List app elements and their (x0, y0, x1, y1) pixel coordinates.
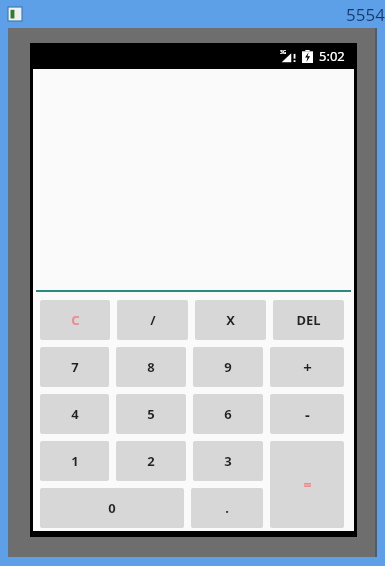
staticText: 3 (224, 452, 232, 470)
button[interactable]: 3 (193, 441, 263, 481)
staticText: 2 (147, 452, 155, 470)
button[interactable]: 7 (40, 347, 109, 387)
other: Emulator app icon (8, 7, 22, 21)
button[interactable]: + (270, 347, 344, 387)
staticText: 8 (147, 358, 155, 376)
button[interactable]: . (191, 488, 263, 528)
staticText: + (303, 357, 312, 377)
staticText: = (303, 475, 312, 494)
button[interactable]: 8 (116, 347, 186, 387)
staticText: 6 (224, 405, 232, 423)
button[interactable]: DEL (273, 300, 344, 340)
staticText: DEL (296, 311, 321, 329)
staticText: 1 (71, 452, 79, 470)
staticText: 3G (280, 49, 287, 56)
staticText: 5 (147, 405, 155, 423)
staticText: / (150, 311, 156, 329)
button[interactable]: 1 (40, 441, 109, 481)
button[interactable]: X (195, 300, 266, 340)
staticText: 0 (108, 499, 116, 517)
button[interactable]: 9 (193, 347, 263, 387)
staticText: - (305, 404, 310, 424)
button[interactable]: 5 (116, 394, 186, 434)
staticText: 4 (71, 405, 79, 423)
staticText: 7 (71, 358, 79, 376)
staticText: 5:02 (319, 47, 345, 65)
staticText: . (225, 499, 229, 517)
button[interactable]: 0 (40, 488, 184, 528)
staticText: 9 (224, 358, 232, 376)
button[interactable]: C (40, 300, 110, 340)
button[interactable]: 6 (193, 394, 263, 434)
button[interactable]: 4 (40, 394, 109, 434)
button[interactable]: - (270, 394, 344, 434)
staticText: C (71, 311, 80, 329)
button[interactable]: / (117, 300, 188, 340)
staticText: X (226, 311, 235, 329)
button[interactable]: = (270, 441, 344, 528)
staticText: 5554 (346, 3, 385, 26)
button[interactable]: 2 (116, 441, 186, 481)
